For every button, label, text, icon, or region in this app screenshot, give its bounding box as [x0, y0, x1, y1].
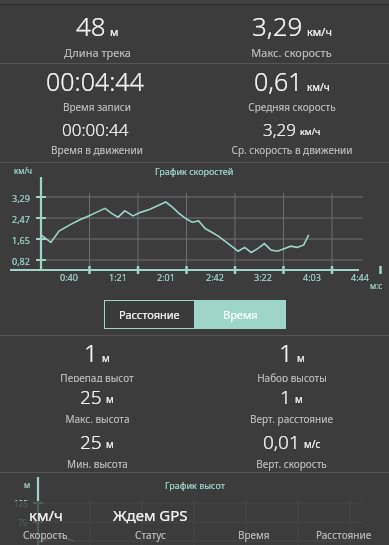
- button[interactable]: км/ч: [0, 505, 91, 542]
- staticText: 0,61: [254, 64, 303, 98]
- staticText: Длина трека: [64, 45, 131, 60]
- staticText: 1:21: [109, 271, 127, 283]
- staticText: 0:40: [60, 271, 78, 283]
- button[interactable]: Время: [209, 505, 299, 542]
- staticText: 00:00:44: [62, 118, 129, 141]
- staticText: 75: [18, 517, 28, 528]
- staticText: м: [24, 479, 31, 490]
- staticText: км/ч: [307, 80, 330, 94]
- staticText: 0,82: [12, 255, 30, 267]
- staticText: Время в движении: [51, 143, 143, 157]
- staticText: Время: [238, 528, 270, 542]
- staticText: 4:44: [351, 271, 369, 283]
- staticText: Средняя скорость: [248, 100, 336, 113]
- staticText: 48: [76, 8, 106, 43]
- staticText: Верт. скорость: [256, 457, 327, 471]
- staticText: Статус: [135, 528, 166, 542]
- staticText: м: [297, 351, 305, 365]
- staticText: м: [106, 392, 114, 406]
- staticText: Расстояние: [119, 307, 180, 322]
- button[interactable]: Время: [195, 300, 286, 329]
- staticText: Верт. расстояние: [250, 412, 333, 426]
- staticText: Перепад высот: [60, 371, 134, 382]
- staticText: Набор высоты: [257, 371, 327, 382]
- staticText: 00:04:44: [46, 64, 144, 98]
- staticText: 1: [84, 336, 98, 369]
- staticText: Ср. скорость в движении: [231, 143, 353, 157]
- staticText: Скорость: [23, 528, 68, 542]
- staticText: м: [102, 351, 110, 365]
- staticText: График скоростей: [155, 165, 234, 177]
- staticText: м: [295, 392, 303, 406]
- staticText: м/с: [304, 437, 321, 451]
- staticText: 3,29: [263, 118, 296, 141]
- staticText: м:с: [370, 280, 383, 291]
- staticText: 1: [279, 336, 293, 369]
- staticText: м: [106, 437, 114, 451]
- staticText: 2:01: [157, 271, 175, 283]
- staticText: 3:22: [254, 271, 272, 283]
- staticText: км/ч: [29, 505, 63, 525]
- button[interactable]: Расстояние: [104, 300, 195, 329]
- staticText: 2,47: [12, 213, 30, 225]
- button[interactable]: Ждем GPS: [91, 505, 209, 542]
- staticText: График высот: [165, 479, 225, 491]
- button[interactable]: Расстояние: [299, 505, 389, 542]
- staticText: км/ч: [300, 125, 321, 137]
- staticText: 0,01: [263, 429, 300, 455]
- staticText: Время записи: [63, 100, 131, 113]
- staticText: 3,29: [252, 8, 303, 43]
- staticText: 2:42: [206, 271, 224, 283]
- staticText: Время: [223, 307, 258, 322]
- staticText: км/ч: [14, 165, 33, 176]
- staticText: 25: [80, 384, 102, 410]
- staticText: Ждем GPS: [113, 505, 188, 525]
- staticText: км/ч: [307, 24, 332, 39]
- staticText: Макс. высота: [65, 412, 130, 426]
- staticText: Макс. скорость: [251, 45, 332, 60]
- staticText: 1: [280, 384, 291, 410]
- staticText: Расстояние: [316, 528, 372, 542]
- staticText: м: [110, 24, 119, 39]
- staticText: 4:03: [303, 271, 321, 283]
- staticText: 25: [80, 429, 102, 455]
- staticText: 3,29: [12, 192, 30, 204]
- staticText: Мин. высота: [67, 457, 128, 471]
- staticText: 125: [14, 498, 28, 509]
- staticText: 1,65: [12, 234, 30, 246]
